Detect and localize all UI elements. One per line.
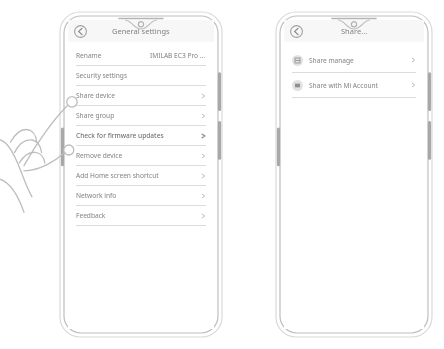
staticText: IMILAB EC3 Pro ... — [150, 51, 206, 60]
button[interactable]: Rename — [68, 46, 214, 66]
staticText: Network info — [76, 191, 117, 200]
button[interactable]: Share group — [68, 106, 214, 126]
button[interactable]: Share with Mi Account — [284, 73, 424, 98]
button[interactable]: Remove device — [68, 146, 214, 166]
staticText: Share manage — [309, 56, 354, 65]
button[interactable]: Back — [290, 25, 303, 38]
staticText: Security settings — [76, 71, 128, 80]
staticText: Rename — [76, 51, 102, 60]
staticText: Share device — [76, 91, 115, 100]
button[interactable]: Check for firmware updates — [68, 126, 214, 146]
staticText: Remove device — [76, 151, 123, 160]
staticText: General settings — [112, 26, 170, 36]
staticText: Feedback — [76, 211, 106, 220]
staticText: Check for firmware updates — [76, 131, 164, 140]
button[interactable]: Add Home screen shortcut — [68, 166, 214, 186]
button[interactable]: Network info — [68, 186, 214, 206]
button[interactable]: Back — [74, 25, 87, 38]
button[interactable]: Security settings — [68, 66, 214, 86]
staticText: Share with Mi Account — [309, 81, 378, 90]
staticText: Share... — [341, 26, 368, 36]
staticText: Add Home screen shortcut — [76, 171, 159, 180]
button[interactable]: Feedback — [68, 206, 214, 226]
staticText: Share group — [76, 111, 115, 120]
button[interactable]: Share manage — [284, 48, 424, 73]
button[interactable]: Share device — [68, 86, 214, 106]
